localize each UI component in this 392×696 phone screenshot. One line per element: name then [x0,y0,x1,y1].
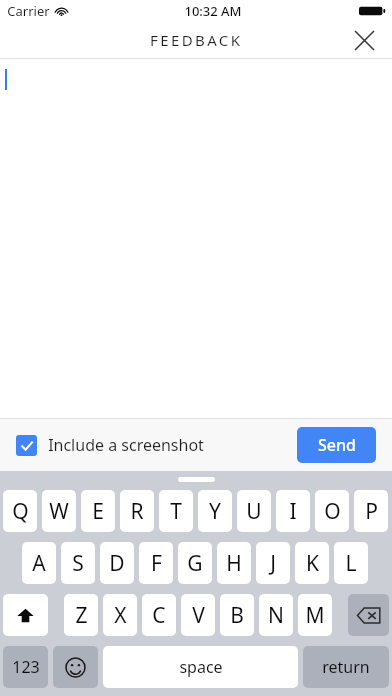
button[interactable]: J [256,542,290,584]
button[interactable]: F [139,542,173,584]
button[interactable]: return [303,646,389,688]
staticText: G [187,549,203,578]
button[interactable]: Send [297,427,376,463]
staticText: W [49,497,69,526]
button[interactable]: W [42,490,76,532]
staticText: space [179,656,223,678]
button[interactable]: Y [198,490,232,532]
staticText: D [109,549,125,578]
staticText: Carrier [7,2,50,20]
button[interactable]: P [354,490,388,532]
staticText: Y [209,497,221,526]
button[interactable]: C [142,594,176,636]
button[interactable]: H [217,542,251,584]
button[interactable]: Include a screenshot [16,434,204,456]
staticText: P [365,497,378,526]
button[interactable]: M [298,594,332,636]
button[interactable]: Emoji [53,646,98,688]
staticText: T [170,497,182,526]
staticText: F [151,549,162,578]
button[interactable]: E [81,490,115,532]
staticText: 10:32 AM [184,2,242,20]
button[interactable]: B [220,594,254,636]
staticText: I [289,497,297,526]
staticText: B [230,601,244,630]
button[interactable]: Backspace [348,594,389,636]
button[interactable]: X [103,594,137,636]
staticText: V [192,601,205,630]
staticText: X [114,601,127,630]
button[interactable]: G [178,542,212,584]
staticText: E [92,497,104,526]
staticText: C [152,601,166,630]
button[interactable]: space [103,646,298,688]
staticText: J [270,549,276,578]
button[interactable]: L [334,542,368,584]
button[interactable]: K [295,542,329,584]
button[interactable]: Q [3,490,37,532]
button[interactable]: A [22,542,56,584]
button[interactable]: Keyboard handle [178,477,215,482]
button[interactable]: Z [64,594,98,636]
button[interactable]: 123 [3,646,48,688]
staticText: A [32,549,46,578]
button[interactable]: N [259,594,293,636]
staticText: Q [12,497,29,526]
button[interactable]: Close [346,22,382,58]
staticText: L [345,549,357,578]
button[interactable]: Shift [3,594,48,636]
button[interactable]: T [159,490,193,532]
staticText: FEEDBACK [150,30,243,50]
button[interactable] [0,59,392,418]
staticText: return [322,656,370,678]
button[interactable]: O [315,490,349,532]
staticText: N [268,601,284,630]
button[interactable]: S [61,542,95,584]
button[interactable]: U [237,490,271,532]
staticText: S [72,549,84,578]
staticText: M [305,601,325,630]
staticText: K [306,549,319,578]
staticText: Include a screenshot [48,434,204,456]
button[interactable]: I [276,490,310,532]
staticText: 123 [12,656,40,678]
staticText: Z [75,601,88,630]
staticText: Send [318,434,356,456]
staticText: H [226,549,242,578]
staticText: R [130,497,144,526]
button[interactable]: D [100,542,134,584]
staticText: O [324,497,341,526]
button[interactable]: V [181,594,215,636]
button[interactable]: R [120,490,154,532]
staticText: U [246,497,262,526]
